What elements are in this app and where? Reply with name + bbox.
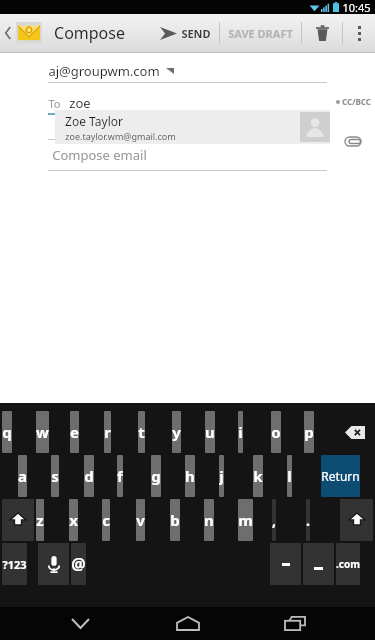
button[interactable]: a xyxy=(18,455,27,497)
staticText: t xyxy=(138,422,145,442)
staticText: c xyxy=(102,510,110,530)
staticText: CC/BCC xyxy=(342,96,371,107)
staticText: ?123 xyxy=(2,557,27,572)
button[interactable]: CC/BCC xyxy=(336,96,371,107)
staticText: w xyxy=(36,422,49,442)
staticText: . xyxy=(306,511,310,530)
button[interactable]: o xyxy=(271,411,281,453)
button[interactable]: Compose email xyxy=(52,146,375,164)
button[interactable]: Zoe Taylor xyxy=(55,110,330,144)
button[interactable]: ?123 xyxy=(2,543,27,585)
button[interactable]: . xyxy=(306,499,310,541)
button[interactable]: d xyxy=(84,455,94,497)
button[interactable]: , xyxy=(272,499,276,541)
button[interactable]: Attach file xyxy=(341,129,365,153)
staticText: Zoe Taylor xyxy=(65,113,123,129)
staticText: x xyxy=(69,510,78,530)
staticText: b xyxy=(170,510,180,530)
button[interactable]: f xyxy=(117,455,123,497)
button[interactable]: Home xyxy=(160,607,216,640)
staticText: e xyxy=(70,422,79,442)
button[interactable]: j xyxy=(219,455,224,497)
staticText: To xyxy=(48,96,61,111)
button[interactable]: Shift xyxy=(2,499,34,541)
staticText: g xyxy=(151,466,161,486)
button[interactable]: b xyxy=(170,499,180,541)
button[interactable]: k xyxy=(253,455,263,497)
staticText: s xyxy=(51,466,59,486)
staticText: y xyxy=(172,422,181,442)
button[interactable]: r xyxy=(104,411,111,453)
staticText: zoe.taylor.wm@gmail.com xyxy=(65,130,176,142)
staticText: r xyxy=(104,422,111,442)
button[interactable]: x xyxy=(69,499,78,541)
button[interactable]: m xyxy=(238,499,253,541)
button[interactable]: i xyxy=(238,411,243,453)
staticText: SAVE DRAFT xyxy=(228,26,293,41)
staticText: aj@groupwm.com xyxy=(48,62,160,80)
button[interactable]: t xyxy=(138,411,145,453)
button[interactable]: u xyxy=(205,411,215,453)
button[interactable]: Shift xyxy=(340,499,373,541)
button[interactable]: y xyxy=(172,411,181,453)
staticText: Return xyxy=(321,468,360,484)
button[interactable]: e xyxy=(70,411,79,453)
staticText: Compose xyxy=(54,22,125,44)
button[interactable]: @ xyxy=(71,543,86,585)
staticText: p xyxy=(304,422,314,442)
staticText: j xyxy=(219,466,224,486)
staticText: o xyxy=(271,422,281,442)
button[interactable]: Up xyxy=(0,22,46,44)
staticText: l xyxy=(287,466,292,486)
staticText: n xyxy=(204,510,214,530)
button[interactable]: l xyxy=(287,455,292,497)
staticText: q xyxy=(2,422,12,442)
button[interactable]: Return xyxy=(321,455,360,497)
button[interactable]: w xyxy=(36,411,49,453)
button[interactable]: aj@groupwm.com xyxy=(48,60,327,82)
staticText: z xyxy=(36,510,44,530)
button[interactable]: n xyxy=(204,499,214,541)
button[interactable]: SEND xyxy=(152,14,219,52)
staticText: k xyxy=(253,466,263,486)
staticText: v xyxy=(136,510,145,530)
button[interactable]: .com xyxy=(336,543,360,585)
button[interactable]: z xyxy=(36,499,44,541)
button[interactable]: Hide keyboard xyxy=(52,607,108,640)
staticText: h xyxy=(185,466,195,486)
staticText: 10:45 xyxy=(342,0,371,14)
button[interactable]: Voice input xyxy=(38,543,69,585)
staticText: SEND xyxy=(181,26,211,41)
button[interactable]: p xyxy=(304,411,314,453)
staticText: f xyxy=(117,466,123,486)
button[interactable]: Delete xyxy=(337,411,373,453)
button[interactable]: To xyxy=(48,93,327,113)
button[interactable]: v xyxy=(136,499,145,541)
staticText: u xyxy=(205,422,215,442)
button[interactable]: Recent apps xyxy=(267,607,323,640)
staticText: m xyxy=(238,510,253,530)
button[interactable]: More options xyxy=(343,14,375,52)
staticText: a xyxy=(18,466,27,486)
button[interactable]: h xyxy=(185,455,195,497)
staticText: d xyxy=(84,466,94,486)
button[interactable]: g xyxy=(151,455,161,497)
staticText: , xyxy=(272,511,276,530)
button[interactable]: s xyxy=(51,455,59,497)
button[interactable]: Dash xyxy=(270,543,301,585)
staticText: i xyxy=(238,422,243,442)
button[interactable]: Underscore xyxy=(303,543,334,585)
button[interactable]: c xyxy=(102,499,110,541)
button[interactable]: q xyxy=(2,411,12,453)
staticText: .com xyxy=(336,557,360,571)
staticText: Compose email xyxy=(52,146,147,164)
button[interactable]: Discard xyxy=(302,14,342,52)
staticText: zoe xyxy=(69,94,91,112)
button[interactable]: SAVE DRAFT xyxy=(220,14,301,52)
staticText: @ xyxy=(71,553,86,575)
